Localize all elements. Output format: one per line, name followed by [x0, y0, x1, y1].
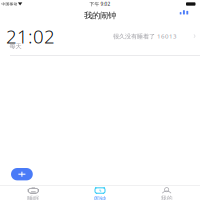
button[interactable]: 闹钟 [67, 186, 133, 200]
button[interactable]: 睡眠 [0, 186, 67, 200]
staticText: 睡眠 [27, 195, 39, 200]
staticText: 闹钟 [94, 195, 106, 200]
staticText: 我的闹钟 [84, 10, 116, 21]
button[interactable]: 添加闹钟 [11, 168, 33, 180]
button[interactable]: 统计 [176, 8, 192, 14]
staticText: 每天 [10, 42, 22, 50]
staticText: 中国移动 [1, 2, 17, 6]
staticText: 很久没有睡着了 16013 [113, 32, 177, 40]
staticText: 我的 [161, 195, 173, 200]
staticText: 下午 9:02 [89, 1, 110, 7]
button[interactable]: 21:02 [0, 21, 200, 56]
staticText: 21:02 [6, 23, 55, 49]
button[interactable]: 我的 [133, 186, 200, 200]
